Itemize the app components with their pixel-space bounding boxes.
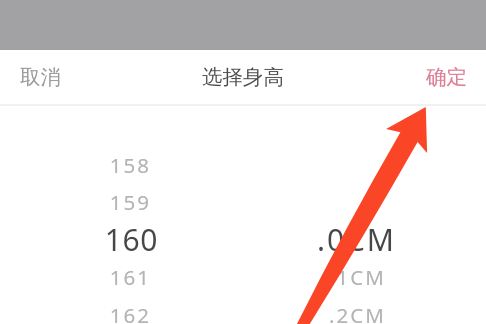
staticText: 158 <box>0 151 151 179</box>
staticText: 159 <box>0 188 151 216</box>
button[interactable]: 158 <box>0 145 486 185</box>
staticText: .1CM <box>329 263 386 291</box>
other: Arrow pointing to the confirm button <box>0 0 486 324</box>
staticText: 162 <box>0 301 151 324</box>
button[interactable]: 160 <box>0 219 486 259</box>
staticText: .0CM <box>317 219 396 259</box>
staticText: 确定 <box>426 64 467 90</box>
staticText: 161 <box>0 263 151 291</box>
button[interactable]: 159 <box>0 182 486 222</box>
button[interactable]: 取消 <box>0 50 81 104</box>
button[interactable]: 161 <box>0 257 486 297</box>
button[interactable]: 162 <box>0 295 486 324</box>
staticText: .2CM <box>329 301 386 324</box>
button[interactable]: 确定 <box>407 50 486 104</box>
staticText: 取消 <box>20 64 61 90</box>
staticText: 选择身高 <box>202 64 284 90</box>
staticText: 160 <box>0 219 158 259</box>
